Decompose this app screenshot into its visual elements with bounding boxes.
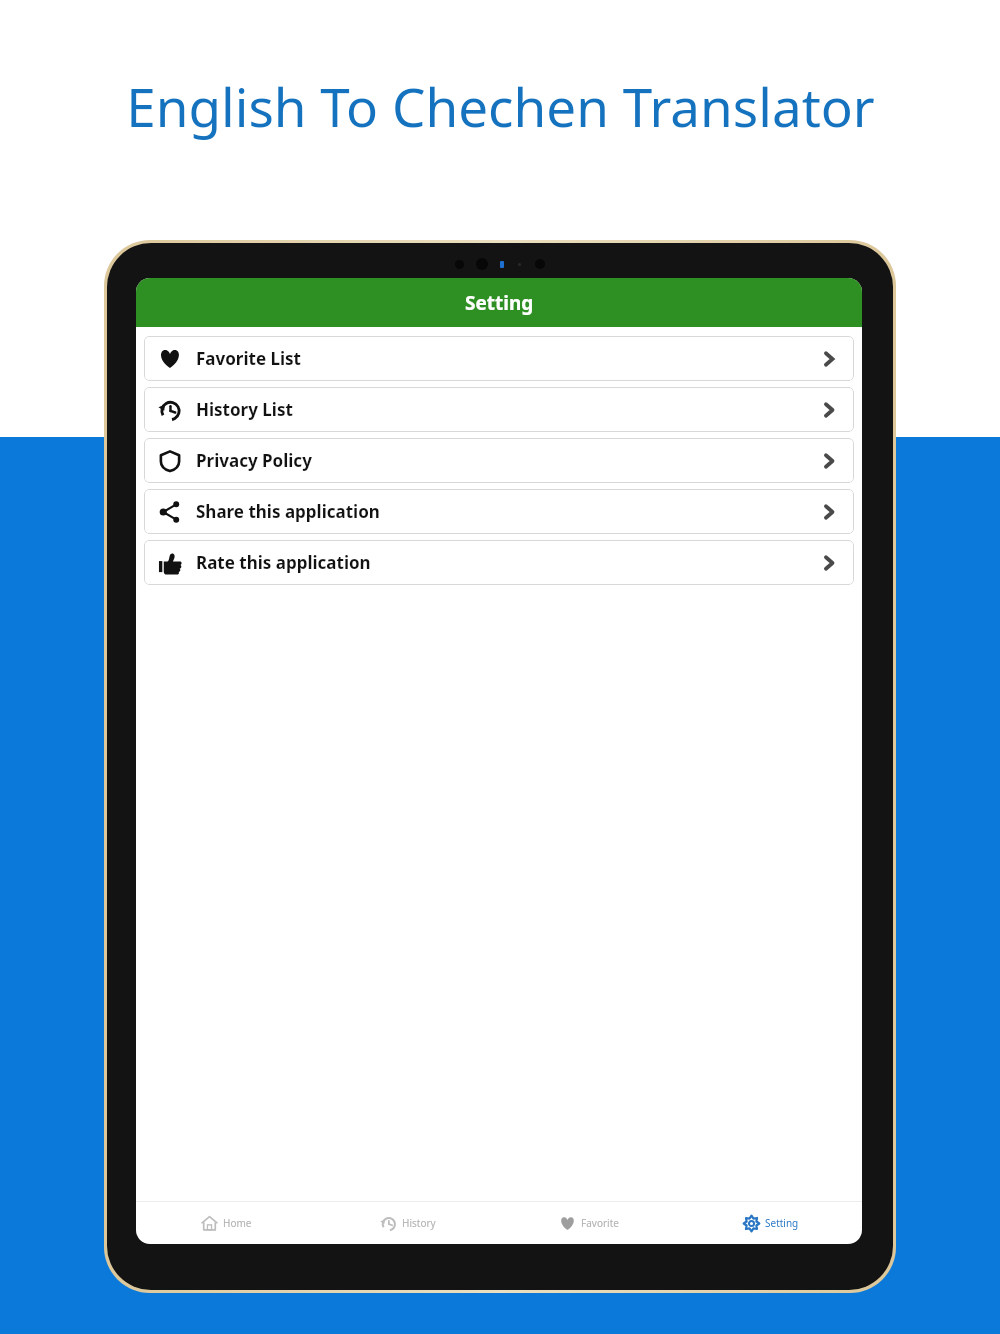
button[interactable]: History: [317, 1202, 498, 1244]
button[interactable]: History List: [144, 387, 854, 432]
button[interactable]: Setting: [680, 1202, 862, 1244]
button[interactable]: Favorite: [498, 1202, 680, 1244]
staticText: History: [402, 1216, 436, 1230]
staticText: Share this application: [196, 500, 380, 523]
staticText: Privacy Policy: [196, 449, 312, 472]
staticText: Setting: [465, 290, 534, 316]
button[interactable]: Share this application: [144, 489, 854, 534]
button[interactable]: Favorite List: [144, 336, 854, 381]
staticText: Rate this application: [196, 551, 371, 574]
button[interactable]: Privacy Policy: [144, 438, 854, 483]
staticText: Favorite List: [196, 347, 301, 370]
staticText: English To Chechen Translator: [126, 70, 875, 142]
button[interactable]: Rate this application: [144, 540, 854, 585]
staticText: Setting: [765, 1216, 799, 1230]
staticText: History List: [196, 398, 293, 421]
button[interactable]: Home: [136, 1202, 317, 1244]
staticText: Favorite: [581, 1216, 619, 1230]
staticText: Home: [223, 1216, 252, 1230]
